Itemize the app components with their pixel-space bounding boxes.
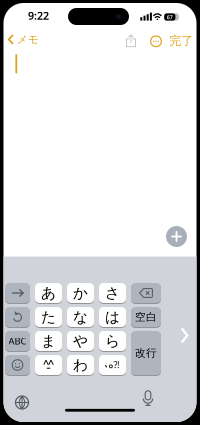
- staticText: !: [117, 359, 120, 371]
- button[interactable]: 音声入力: [142, 391, 153, 406]
- staticText: メモ: [17, 33, 39, 46]
- button[interactable]: ?: [99, 355, 126, 375]
- button[interactable]: 改行: [131, 331, 161, 375]
- staticText: 改行: [135, 346, 157, 359]
- button[interactable]: 完了: [169, 33, 193, 48]
- staticText: ABC: [8, 335, 26, 347]
- staticText: 67: [167, 14, 173, 21]
- button[interactable]: ら: [99, 331, 126, 351]
- staticText: は: [105, 308, 120, 326]
- staticText: ?: [113, 359, 117, 371]
- button[interactable]: メモ: [5, 32, 39, 47]
- button[interactable]: 次のキーボード: [15, 395, 29, 409]
- staticText: わ: [73, 356, 88, 374]
- staticText: ^: [43, 356, 49, 371]
- button[interactable]: 絵文字: [5, 355, 30, 375]
- staticText: あ: [41, 284, 56, 302]
- button[interactable]: は: [99, 307, 126, 327]
- button[interactable]: キーボードを閉じる: [180, 327, 188, 344]
- button[interactable]: More: [151, 36, 161, 47]
- button[interactable]: た: [35, 307, 62, 327]
- button[interactable]: ABC: [5, 331, 30, 351]
- button[interactable]: ま: [35, 331, 62, 351]
- button[interactable]: New checklist: [166, 226, 187, 247]
- button[interactable]: 空白: [131, 307, 161, 327]
- button[interactable]: Share: [125, 34, 136, 47]
- button[interactable]: か: [67, 283, 94, 303]
- staticText: た: [41, 308, 56, 326]
- staticText: 完了: [169, 33, 193, 48]
- button[interactable]: カーソル移動: [5, 283, 30, 303]
- button[interactable]: わ: [67, 355, 94, 375]
- button[interactable]: 削除: [131, 283, 161, 303]
- staticText: ^: [48, 356, 54, 371]
- button[interactable]: ^: [35, 355, 62, 375]
- staticText: さ: [105, 284, 120, 302]
- staticText: か: [73, 284, 88, 302]
- staticText: 9:22: [28, 8, 49, 23]
- button[interactable]: あ: [35, 283, 62, 303]
- button[interactable]: 元に戻す: [5, 307, 30, 327]
- button[interactable]: や: [67, 331, 94, 351]
- button[interactable]: な: [67, 307, 94, 327]
- staticText: ま: [41, 332, 56, 350]
- staticText: や: [73, 332, 88, 350]
- button[interactable]: さ: [99, 283, 126, 303]
- staticText: ら: [105, 332, 120, 350]
- staticText: な: [73, 308, 88, 326]
- staticText: 空白: [135, 310, 157, 323]
